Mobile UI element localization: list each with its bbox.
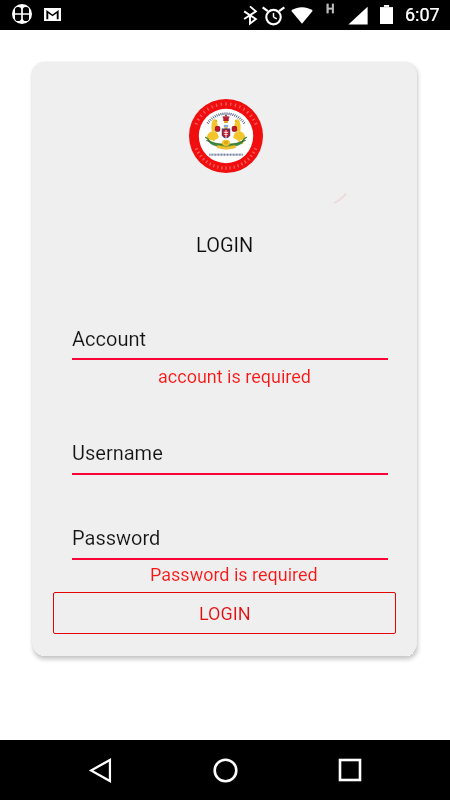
- staticText: H: [326, 2, 335, 16]
- staticText: Password is required: [150, 564, 318, 585]
- staticText: Username: [72, 441, 163, 464]
- staticText: account is required: [158, 366, 311, 387]
- staticText: Account: [72, 327, 147, 350]
- button[interactable]: LOGIN: [53, 592, 396, 634]
- button[interactable]: Back: [76, 740, 124, 800]
- staticText: 6:07: [405, 4, 440, 25]
- button[interactable]: Home: [201, 740, 249, 800]
- staticText: LOGIN: [196, 233, 254, 256]
- staticText: Password: [72, 526, 161, 549]
- button[interactable]: Recent apps: [326, 740, 374, 800]
- staticText: LOGIN: [199, 603, 251, 624]
